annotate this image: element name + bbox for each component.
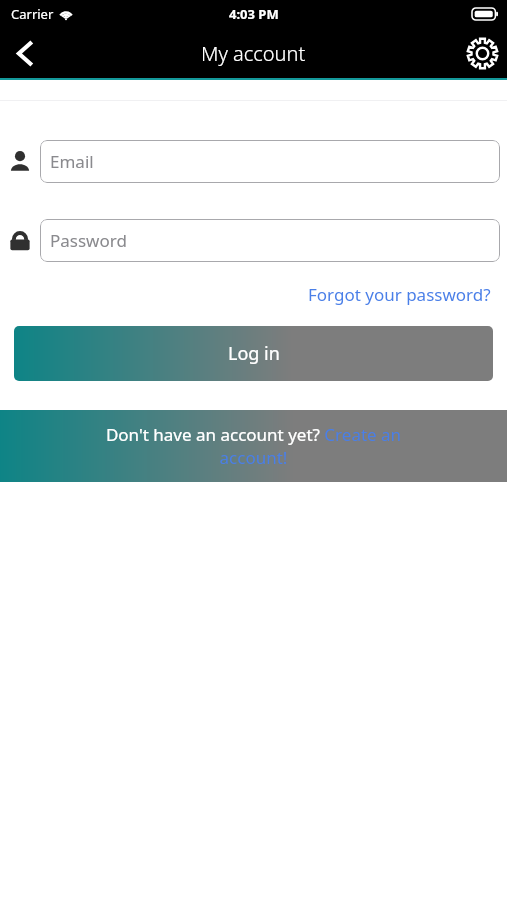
staticText: My account xyxy=(201,40,306,67)
staticText: Carrier xyxy=(11,5,54,23)
staticText: Log in xyxy=(228,341,280,366)
button[interactable]: Don't have an account yet? Create an acc… xyxy=(0,410,507,482)
button[interactable]: Settings xyxy=(457,28,507,78)
staticText: Don't have an account yet? Create an acc… xyxy=(80,423,427,469)
button[interactable]: Forgot your password? xyxy=(306,281,493,308)
staticText: Forgot your password? xyxy=(308,283,491,306)
staticText: 4:03 PM xyxy=(229,5,279,23)
button[interactable]: Password xyxy=(40,219,500,262)
staticText: Email xyxy=(50,150,94,173)
button[interactable]: Back xyxy=(0,28,50,78)
button[interactable]: Email xyxy=(40,140,500,183)
staticText: Password xyxy=(50,229,127,252)
button[interactable]: Log in xyxy=(14,326,493,381)
